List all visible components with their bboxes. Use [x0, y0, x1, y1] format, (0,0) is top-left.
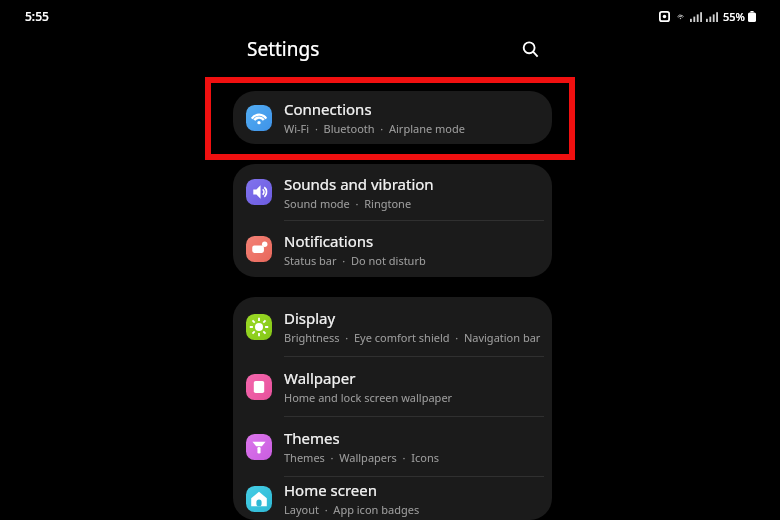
- staticText: 5:55: [25, 8, 49, 24]
- staticText: Home and lock screen wallpaper: [284, 390, 453, 405]
- button[interactable]: Sounds and vibration: [233, 164, 552, 220]
- button[interactable]: Wallpaper: [233, 357, 552, 416]
- staticText: Brightness · Eye comfort shield · Naviga…: [284, 330, 541, 345]
- staticText: 55%: [723, 9, 745, 24]
- button[interactable]: Connections: [233, 91, 552, 144]
- staticText: Notifications: [284, 231, 374, 251]
- staticText: Settings: [247, 36, 320, 62]
- staticText: Wi-Fi · Bluetooth · Airplane mode: [284, 121, 465, 136]
- staticText: Display: [284, 308, 336, 328]
- staticText: Status bar · Do not disturb: [284, 253, 426, 268]
- staticText: Sound mode · Ringtone: [284, 196, 412, 211]
- staticText: Sounds and vibration: [284, 174, 434, 194]
- staticText: Themes: [284, 428, 340, 448]
- button[interactable]: Notifications: [233, 221, 552, 277]
- button[interactable]: Themes: [233, 417, 552, 476]
- button[interactable]: Display: [233, 297, 552, 356]
- staticText: Home screen: [284, 480, 378, 500]
- staticText: Wallpaper: [284, 368, 356, 388]
- staticText: Connections: [284, 99, 372, 119]
- staticText: Layout · App icon badges: [284, 502, 420, 517]
- button[interactable]: Home screen: [233, 477, 552, 520]
- button[interactable]: Search: [513, 32, 547, 66]
- staticText: Themes · Wallpapers · Icons: [284, 450, 439, 465]
